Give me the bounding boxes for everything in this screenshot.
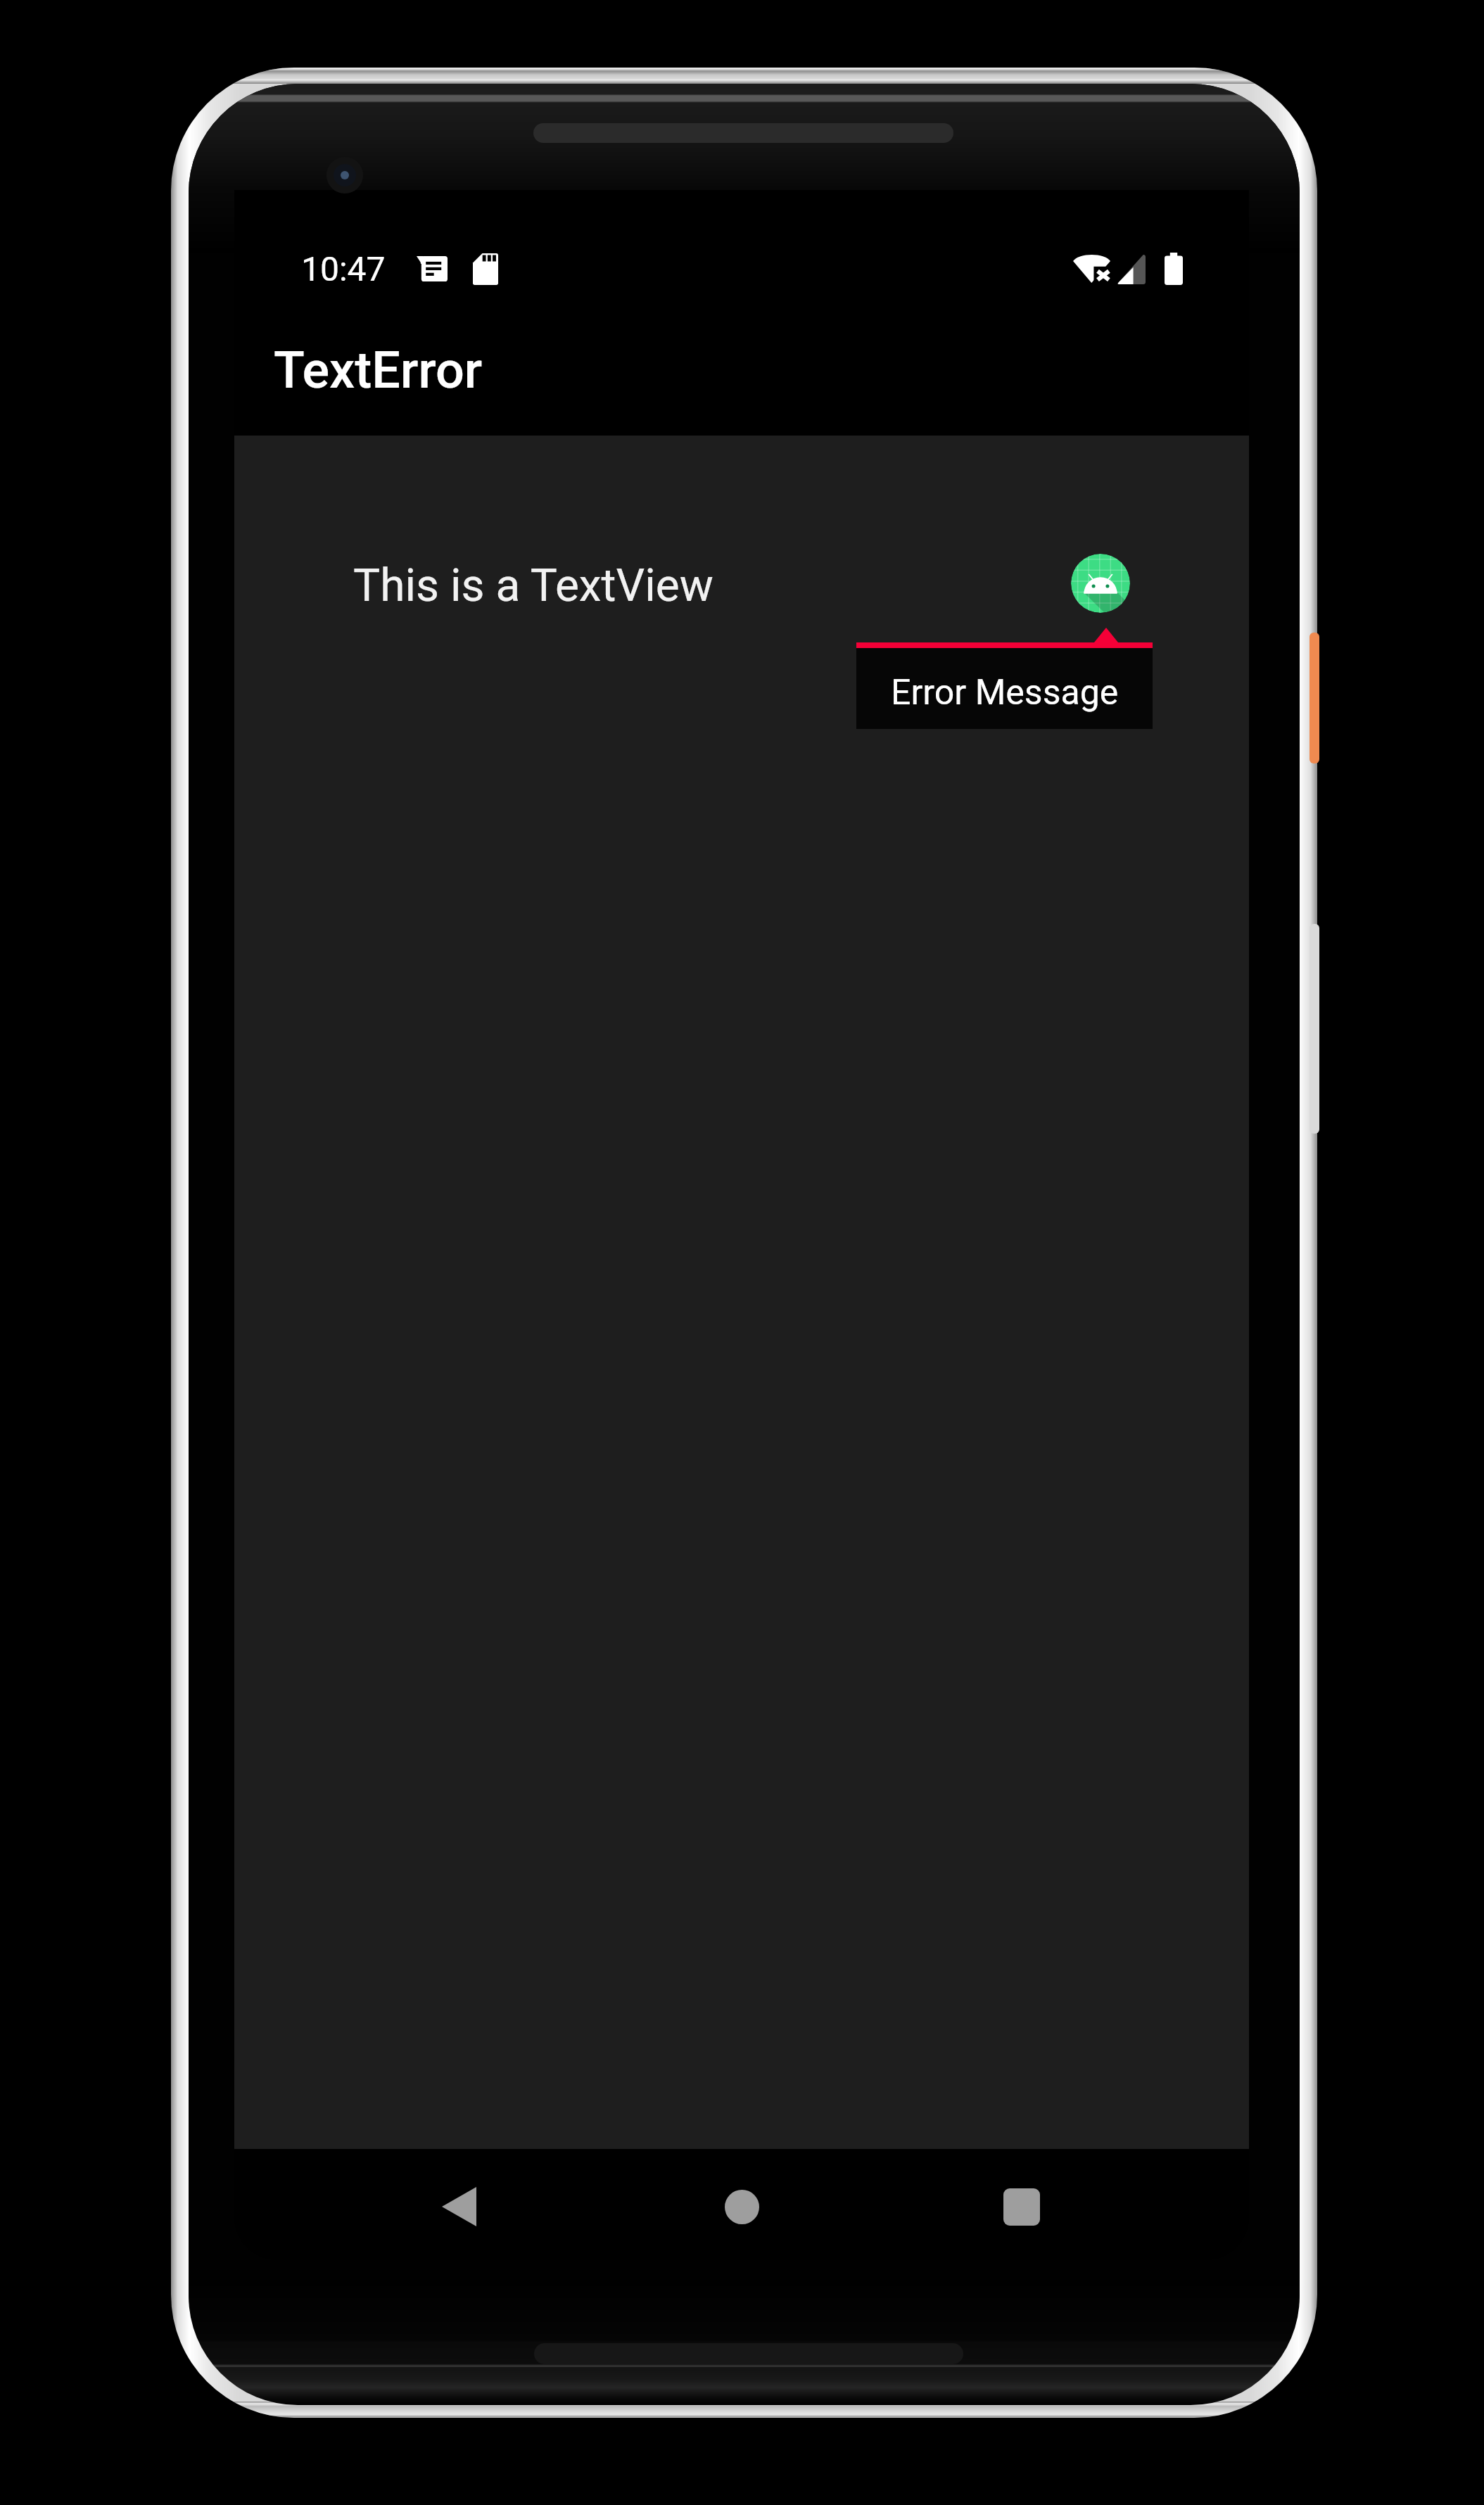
button[interactable]: Android logo: [1071, 554, 1130, 613]
button[interactable]: Back: [420, 2168, 497, 2245]
staticText: Error Message: [891, 672, 1119, 714]
staticText: TextError: [274, 341, 483, 400]
button[interactable]: Error Message: [856, 626, 1153, 729]
button[interactable]: Recent apps: [983, 2168, 1060, 2245]
button[interactable]: Home: [703, 2168, 780, 2245]
staticText: 10:47: [301, 249, 386, 288]
staticText: This is a TextView: [353, 559, 714, 612]
